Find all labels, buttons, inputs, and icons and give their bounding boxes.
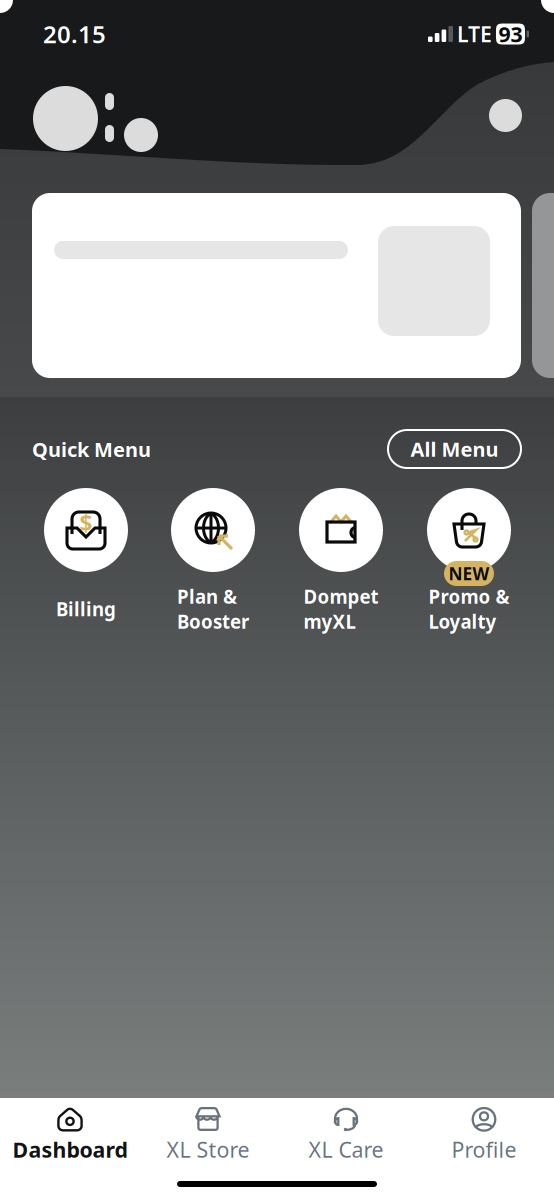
- staticText: XL Store: [166, 1135, 249, 1164]
- button[interactable]: Plan & Booster: [150, 425, 276, 640]
- staticText: 93: [498, 20, 522, 48]
- staticText: Dompet myXL: [303, 584, 378, 634]
- button[interactable]: Dashboard: [1, 1107, 139, 1163]
- staticText: Dashboard: [12, 1135, 127, 1164]
- button[interactable]: NEW: [406, 425, 532, 640]
- button[interactable]: XL Store: [139, 1107, 277, 1163]
- staticText: Promo & Loyalty: [428, 584, 509, 634]
- staticText: 20.15: [43, 18, 106, 50]
- staticText: Plan & Booster: [177, 584, 249, 634]
- staticText: NEW: [448, 562, 489, 585]
- button[interactable]: Profile: [415, 1107, 553, 1163]
- staticText: Billing: [56, 597, 116, 621]
- staticText: Quick Menu: [32, 436, 151, 463]
- button[interactable]: $: [23, 425, 149, 640]
- button[interactable]: Dompet myXL: [278, 425, 404, 640]
- staticText: $: [79, 508, 92, 538]
- staticText: LTE: [457, 20, 492, 48]
- button[interactable]: XL Care: [277, 1107, 415, 1163]
- staticText: All Menu: [410, 436, 498, 462]
- staticText: XL Care: [308, 1135, 383, 1164]
- staticText: Profile: [451, 1135, 516, 1164]
- button[interactable]: All Menu: [388, 430, 521, 468]
